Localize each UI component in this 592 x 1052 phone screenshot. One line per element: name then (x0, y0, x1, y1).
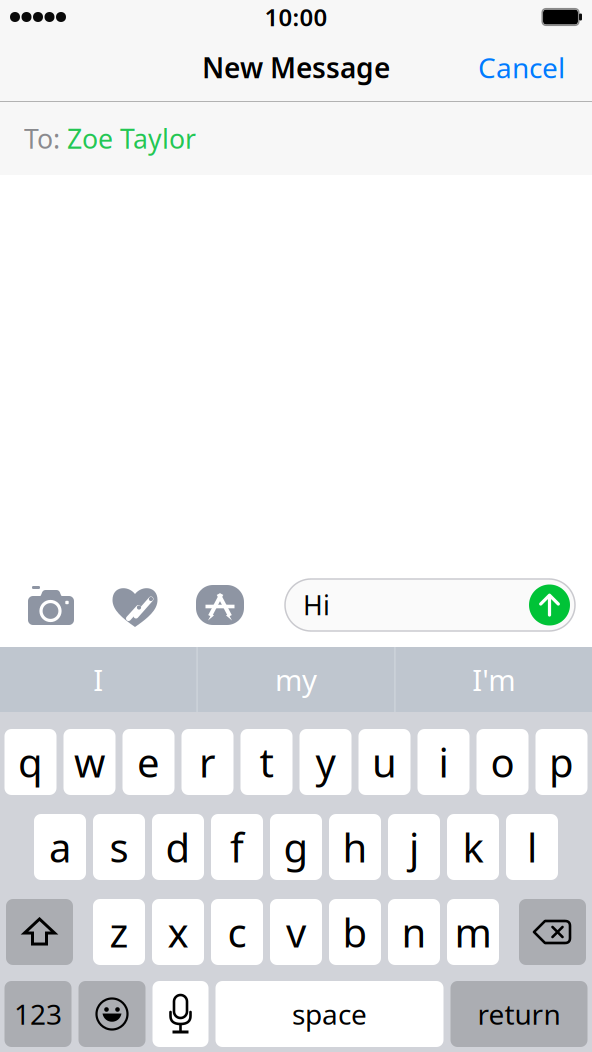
button[interactable]: y (299, 729, 351, 795)
staticText: Zoe Taylor (60, 121, 196, 156)
button[interactable]: z (93, 899, 145, 965)
staticText: s (109, 820, 128, 873)
staticText: c (227, 905, 246, 958)
staticText: m (454, 905, 491, 958)
button[interactable]: g (270, 814, 322, 880)
staticText: q (18, 735, 43, 788)
staticText: j (409, 820, 419, 873)
staticText: Hi (303, 587, 330, 623)
button[interactable]: Delete (519, 899, 586, 965)
staticText: f (230, 820, 244, 873)
button[interactable]: v (270, 899, 322, 965)
button[interactable]: d (152, 814, 204, 880)
staticText: r (199, 735, 216, 788)
button[interactable]: 123 (4, 981, 71, 1047)
button[interactable]: I (0, 647, 196, 712)
button[interactable]: Dictation (152, 981, 208, 1047)
button[interactable]: Cancel (462, 41, 581, 94)
staticText: space (292, 995, 367, 1033)
staticText: To: (24, 121, 60, 156)
staticText: New Message (202, 49, 390, 86)
button[interactable]: q (4, 729, 56, 795)
staticText: i (438, 735, 448, 788)
button[interactable]: k (447, 814, 499, 880)
button[interactable]: p (535, 729, 587, 795)
staticText: w (74, 735, 105, 788)
button[interactable]: Digital Touch (111, 583, 159, 627)
button[interactable]: r (181, 729, 233, 795)
button[interactable]: a (34, 814, 86, 880)
button[interactable]: Send (529, 584, 570, 625)
staticText: t (259, 735, 273, 788)
staticText: x (167, 905, 188, 958)
button[interactable]: return (450, 981, 587, 1047)
staticText: 123 (14, 995, 62, 1033)
staticText: n (401, 905, 426, 958)
button[interactable]: space (215, 981, 443, 1047)
button[interactable]: I'm (396, 647, 592, 712)
staticText: a (49, 820, 71, 873)
staticText: l (527, 820, 537, 873)
staticText: 10:00 (264, 1, 327, 33)
staticText: u (372, 735, 397, 788)
button[interactable]: j (388, 814, 440, 880)
button[interactable]: u (358, 729, 410, 795)
button[interactable]: o (476, 729, 528, 795)
button[interactable]: m (447, 899, 499, 965)
button[interactable]: Shift (6, 899, 73, 965)
button[interactable]: my (198, 647, 394, 712)
button[interactable]: x (152, 899, 204, 965)
button[interactable]: App Store (196, 585, 244, 625)
button[interactable]: b (329, 899, 381, 965)
staticText: k (462, 820, 483, 873)
button[interactable]: n (388, 899, 440, 965)
staticText: Cancel (478, 49, 565, 86)
staticText: I'm (472, 660, 515, 699)
staticText: h (342, 820, 367, 873)
staticText: I (93, 660, 103, 699)
staticText: g (283, 820, 308, 873)
staticText: d (165, 820, 190, 873)
button[interactable]: c (211, 899, 263, 965)
staticText: z (109, 905, 128, 958)
staticText: y (315, 735, 335, 788)
button[interactable]: e (122, 729, 174, 795)
staticText: return (477, 995, 560, 1033)
button[interactable]: w (63, 729, 115, 795)
staticText: p (549, 735, 574, 788)
button[interactable]: i (417, 729, 469, 795)
button[interactable]: Camera (28, 585, 74, 625)
staticText: b (342, 905, 367, 958)
button[interactable]: s (93, 814, 145, 880)
button[interactable]: t (240, 729, 292, 795)
button[interactable]: l (506, 814, 558, 880)
staticText: v (286, 905, 306, 958)
staticText: o (490, 735, 514, 788)
button[interactable]: f (211, 814, 263, 880)
button[interactable]: h (329, 814, 381, 880)
button[interactable]: Emoji (78, 981, 145, 1047)
staticText: my (275, 660, 317, 699)
staticText: e (137, 735, 160, 788)
